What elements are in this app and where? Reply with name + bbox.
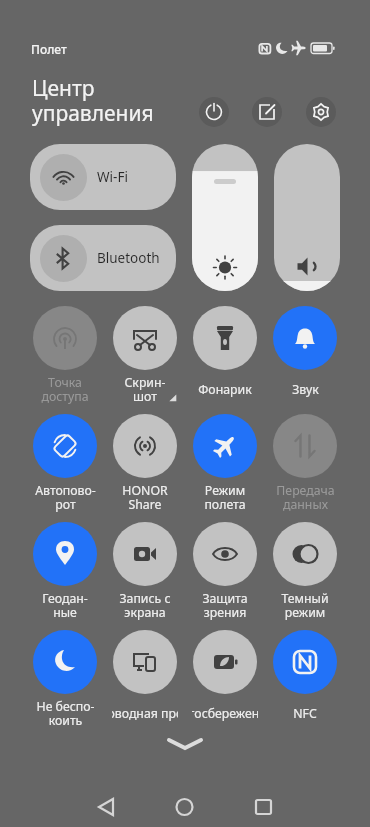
staticText: Скрин- шот (124, 374, 166, 404)
staticText: Центр управления (32, 74, 154, 127)
button[interactable]: Запись с экрана (105, 522, 185, 620)
button[interactable]: Wi-Fi (30, 144, 176, 210)
button[interactable]: Скрин- шот (105, 306, 185, 404)
staticText: Звук (292, 381, 319, 398)
staticText: Беспроводная проекция (112, 705, 178, 722)
button[interactable]: Передача данных (265, 414, 345, 512)
staticText: Полет (31, 41, 67, 57)
staticText: Геодан- ные (42, 590, 88, 620)
button[interactable]: Режим полета (185, 414, 265, 512)
staticText: Bluetooth (97, 249, 160, 267)
staticText: Защита зрения (202, 590, 248, 620)
button[interactable]: Фонарик (185, 306, 265, 404)
button[interactable]: Recents (244, 787, 284, 827)
button[interactable]: HONOR Share (105, 414, 185, 512)
staticText: Автопово- рот (35, 482, 96, 512)
staticText: Фонарик (198, 381, 252, 398)
staticText: Темный режим (281, 590, 329, 620)
staticText: Не беспо- коить (36, 698, 95, 728)
staticText: NFC (293, 705, 317, 722)
button[interactable]: Беспроводная проекция (105, 630, 185, 728)
button[interactable]: Не беспо- коить (25, 630, 105, 728)
staticText: Режим полета (204, 482, 246, 512)
button[interactable]: Volume (274, 144, 340, 291)
button[interactable]: Settings (306, 97, 336, 127)
button[interactable]: Edit (252, 97, 282, 127)
button[interactable]: Home (165, 787, 205, 827)
button[interactable]: Защита зрения (185, 522, 265, 620)
staticText: Энергосбережение (192, 705, 258, 722)
staticText: Запись с экрана (119, 590, 171, 620)
staticText: Передача данных (276, 482, 335, 512)
button[interactable]: Back (86, 787, 126, 827)
button[interactable]: Точка доступа (25, 306, 105, 404)
button[interactable]: Энергосбережение (185, 630, 265, 728)
button[interactable]: Brightness (192, 144, 258, 291)
button[interactable]: Bluetooth (30, 225, 176, 291)
button[interactable]: NFC (265, 630, 345, 728)
staticText: Точка доступа (41, 374, 89, 404)
staticText: HONOR Share (122, 482, 168, 512)
button[interactable]: Collapse (160, 732, 210, 756)
button[interactable]: Звук (265, 306, 345, 404)
staticText: Wi-Fi (97, 168, 128, 186)
button[interactable]: Геодан- ные (25, 522, 105, 620)
button[interactable]: Power (199, 97, 229, 127)
button[interactable]: Автопово- рот (25, 414, 105, 512)
button[interactable]: Темный режим (265, 522, 345, 620)
